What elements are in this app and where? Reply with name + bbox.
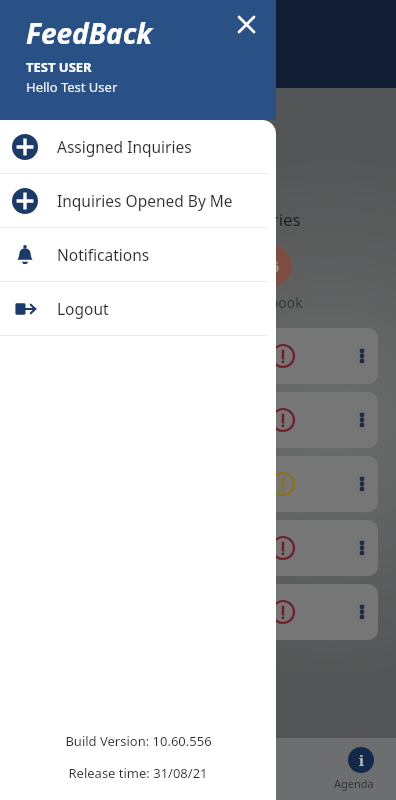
staticText: Facebook xyxy=(240,293,303,312)
staticText: FeedBack xyxy=(26,14,153,52)
staticText: Notifications xyxy=(57,244,150,265)
staticText: Inquiries xyxy=(230,208,301,231)
staticText: Agenda xyxy=(334,776,374,791)
button[interactable]: Logout xyxy=(0,282,276,335)
staticText: Hello Test User xyxy=(26,78,118,96)
staticText: 36 xyxy=(262,256,280,276)
staticText: i xyxy=(359,751,364,770)
staticText: Logout xyxy=(57,298,109,319)
staticText: Build Version: 10.60.556 xyxy=(65,732,212,750)
button[interactable]: Inquiries Opened By Me xyxy=(0,174,276,227)
button[interactable]: Assigned Inquiries xyxy=(0,120,276,173)
button[interactable]: Notifications xyxy=(0,228,276,281)
staticText: Assigned Inquiries xyxy=(57,136,192,157)
staticText: TEST USER xyxy=(26,58,92,76)
staticText: Release time: 31/08/21 xyxy=(68,764,208,782)
button[interactable]: Close drawer xyxy=(232,10,260,38)
staticText: Inquiries Opened By Me xyxy=(57,190,233,211)
